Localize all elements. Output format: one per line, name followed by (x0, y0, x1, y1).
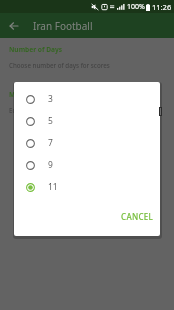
staticText: Number of Days (9, 45, 63, 54)
staticText: 3 (48, 93, 53, 105)
staticText: 11:26 (152, 2, 172, 12)
staticText: 100% (127, 2, 145, 12)
staticText: Choose number of days for scores (9, 61, 110, 69)
staticText: 9 (48, 159, 53, 171)
button[interactable]: 7 (14, 132, 160, 154)
staticText: 11 (48, 181, 58, 193)
staticText: 7 (48, 137, 53, 149)
button[interactable]: 3 (14, 88, 160, 110)
button[interactable]: Back (1, 13, 26, 38)
staticText: Iran Football (33, 19, 93, 33)
staticText: Edit favourite teams (9, 106, 69, 114)
button[interactable]: CANCEL (113, 207, 160, 226)
button[interactable]: 11 (14, 176, 160, 198)
staticText: CANCEL (121, 211, 154, 222)
staticText: 5 (48, 115, 53, 127)
button[interactable]: 9 (14, 154, 160, 176)
button[interactable]: 5 (14, 110, 160, 132)
staticText: My Teams (9, 90, 42, 99)
